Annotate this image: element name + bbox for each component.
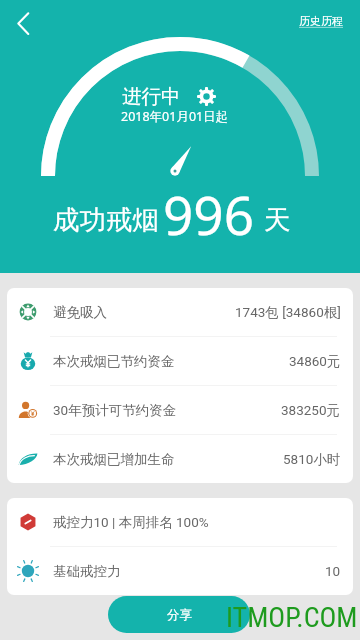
- staticText: 10: [325, 563, 341, 579]
- staticText: 基础戒控力: [53, 563, 121, 580]
- staticText: 天: [264, 203, 291, 236]
- staticText: 本次戒烟已节约资金: [53, 353, 175, 370]
- button[interactable]: 基础戒控力: [7, 547, 353, 595]
- button[interactable]: 本次戒烟已节约资金: [7, 337, 353, 385]
- staticText: 本次戒烟已增加生命: [53, 451, 175, 468]
- staticText: 5810小时: [283, 451, 341, 468]
- staticText: 2018年01月01日起: [121, 108, 229, 125]
- button[interactable]: 30年预计可节约资金: [7, 386, 353, 434]
- staticText: 34860元: [289, 353, 341, 370]
- staticText: 1743包 [34860根]: [235, 304, 341, 321]
- staticText: 历史历程: [299, 14, 343, 28]
- staticText: 避免吸入: [53, 304, 107, 321]
- button[interactable]: 戒控力10 | 本周排名 100%: [7, 498, 353, 546]
- button[interactable]: Back: [5, 5, 41, 41]
- staticText: 分享: [167, 607, 192, 623]
- staticText: 进行中: [122, 84, 181, 109]
- button[interactable]: 避免吸入: [7, 288, 353, 336]
- staticText: 30年预计可节约资金: [53, 402, 177, 419]
- staticText: 383250元: [281, 402, 341, 419]
- staticText: 996: [163, 178, 254, 250]
- staticText: 戒控力10 | 本周排名 100%: [53, 514, 209, 531]
- button[interactable]: 历史历程: [299, 14, 343, 28]
- staticText: 成功戒烟: [53, 203, 159, 236]
- staticText: ITMOP.COM: [226, 601, 358, 634]
- button[interactable]: 分享: [108, 596, 250, 633]
- button[interactable]: 本次戒烟已增加生命: [7, 435, 353, 483]
